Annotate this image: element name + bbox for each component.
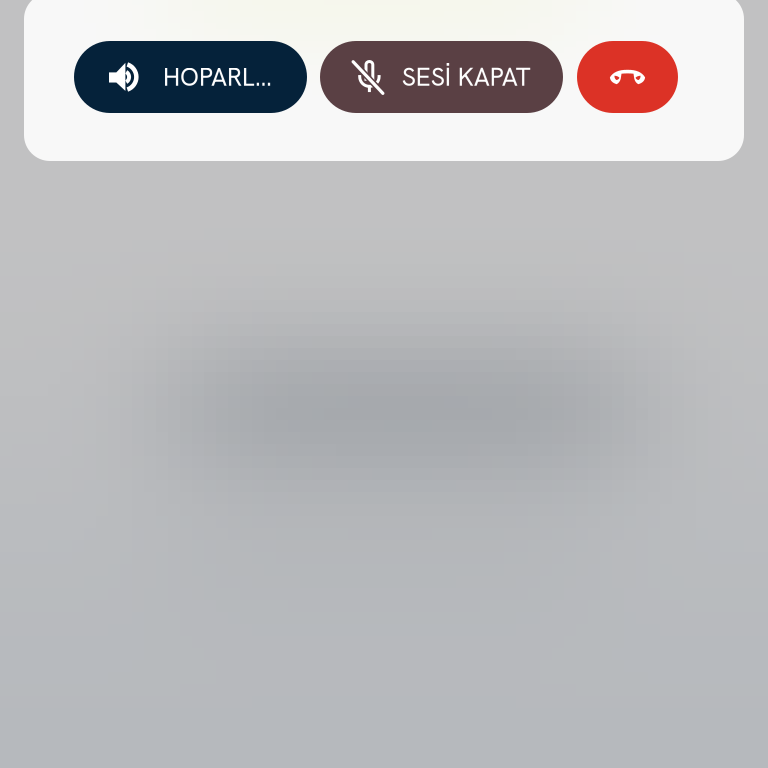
button[interactable]: Hoparlör (74, 41, 307, 113)
staticText: HOPARL… (163, 60, 272, 93)
button[interactable]: Sesi Kapat (320, 41, 563, 113)
staticText: SESİ KAPAT (402, 60, 531, 93)
button[interactable]: Aramayı Sonlandır (577, 41, 678, 113)
